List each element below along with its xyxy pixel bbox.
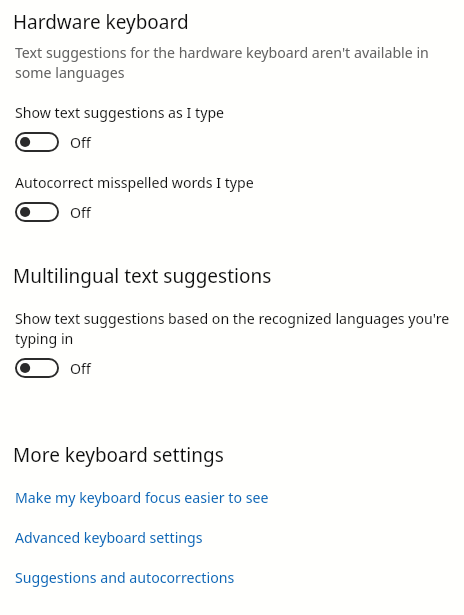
button[interactable]: Show text suggestions as I type, off bbox=[15, 132, 115, 152]
staticText: Off bbox=[70, 358, 91, 378]
staticText: Advanced keyboard settings bbox=[15, 527, 203, 547]
button[interactable]: Show text suggestions based on the recog… bbox=[15, 358, 115, 378]
staticText: More keyboard settings bbox=[13, 441, 224, 468]
button[interactable]: Autocorrect misspelled words I type, off bbox=[15, 202, 115, 222]
staticText: Suggestions and autocorrections bbox=[15, 567, 235, 587]
button[interactable]: Suggestions and autocorrections bbox=[15, 567, 241, 587]
button[interactable]: Advanced keyboard settings bbox=[15, 527, 209, 547]
staticText: Off bbox=[70, 202, 91, 222]
button[interactable]: Make my keyboard focus easier to see bbox=[15, 487, 277, 507]
staticText: Make my keyboard focus easier to see bbox=[15, 487, 269, 507]
staticText: Show text suggestions as I type bbox=[15, 102, 225, 122]
staticText: Text suggestions for the hardware keyboa… bbox=[15, 42, 455, 82]
staticText: Show text suggestions based on the recog… bbox=[15, 308, 455, 348]
staticText: Off bbox=[70, 132, 91, 152]
staticText: Autocorrect misspelled words I type bbox=[15, 172, 254, 192]
staticText: Multilingual text suggestions bbox=[13, 262, 272, 289]
staticText: Hardware keyboard bbox=[13, 8, 189, 35]
